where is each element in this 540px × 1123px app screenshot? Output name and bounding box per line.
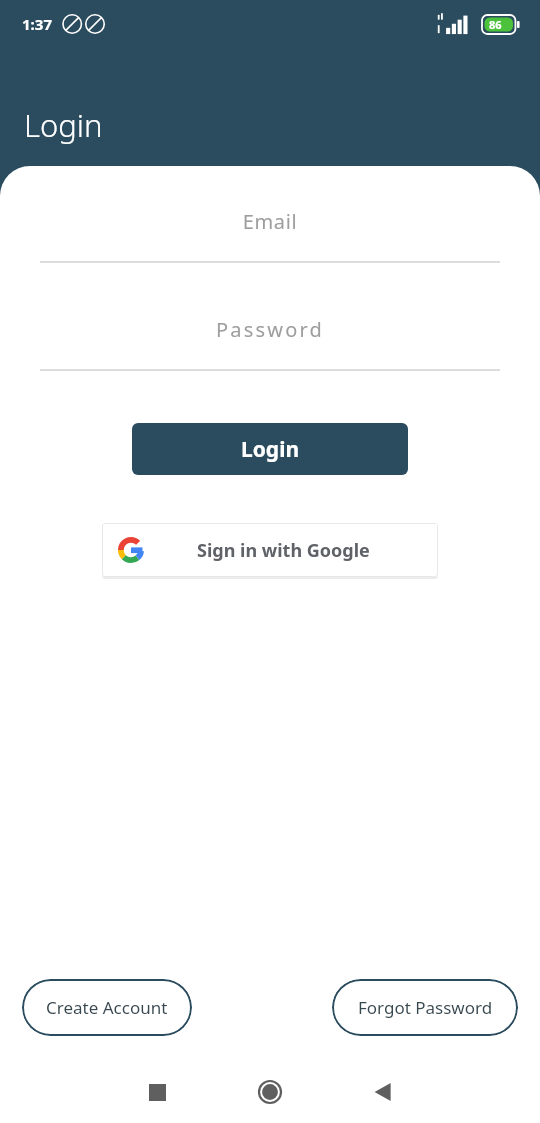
- button[interactable]: Sign in with Google: [102, 523, 438, 577]
- button[interactable]: Login: [132, 423, 408, 475]
- button[interactable]: Create Account: [22, 979, 192, 1036]
- staticText: 1:37: [22, 14, 52, 34]
- staticText: Login: [24, 104, 103, 146]
- button[interactable]: Forgot Password: [332, 979, 518, 1036]
- button[interactable]: Back: [354, 1063, 412, 1121]
- staticText: Login: [241, 435, 300, 464]
- staticText: Forgot Password: [358, 996, 493, 1019]
- button[interactable]: Recent apps: [128, 1063, 186, 1121]
- button[interactable]: Password: [40, 296, 500, 371]
- staticText: Create Account: [46, 996, 168, 1019]
- button[interactable]: Home: [241, 1063, 299, 1121]
- staticText: Sign in with Google: [197, 538, 370, 563]
- staticText: Password: [40, 316, 500, 343]
- staticText: 86: [489, 17, 502, 32]
- staticText: Email: [40, 208, 500, 235]
- button[interactable]: Email: [40, 188, 500, 263]
